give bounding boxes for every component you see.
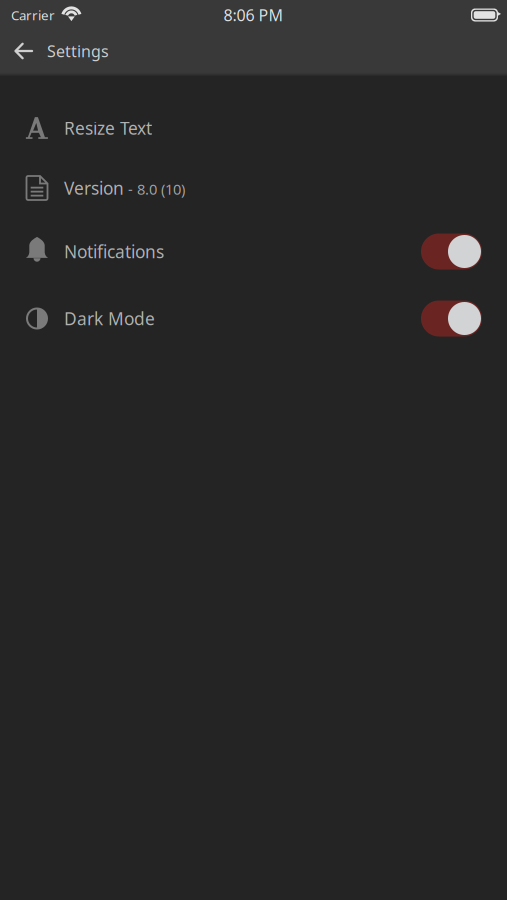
button[interactable]: Back	[11, 28, 37, 74]
staticText: Carrier	[11, 6, 55, 24]
button[interactable]: Version	[0, 158, 507, 218]
staticText: 8:06 PM	[223, 4, 283, 26]
button[interactable]: Notifications	[0, 218, 507, 285]
button[interactable]: Dark Mode	[0, 285, 507, 352]
staticText: Dark Mode	[64, 307, 155, 330]
button[interactable]: Resize Text	[0, 98, 507, 158]
staticText: - 8.0 (10)	[124, 179, 185, 199]
staticText: Resize Text	[64, 116, 152, 139]
staticText: Settings	[47, 40, 109, 62]
staticText: Version	[64, 176, 124, 199]
staticText: Notifications	[64, 240, 164, 263]
